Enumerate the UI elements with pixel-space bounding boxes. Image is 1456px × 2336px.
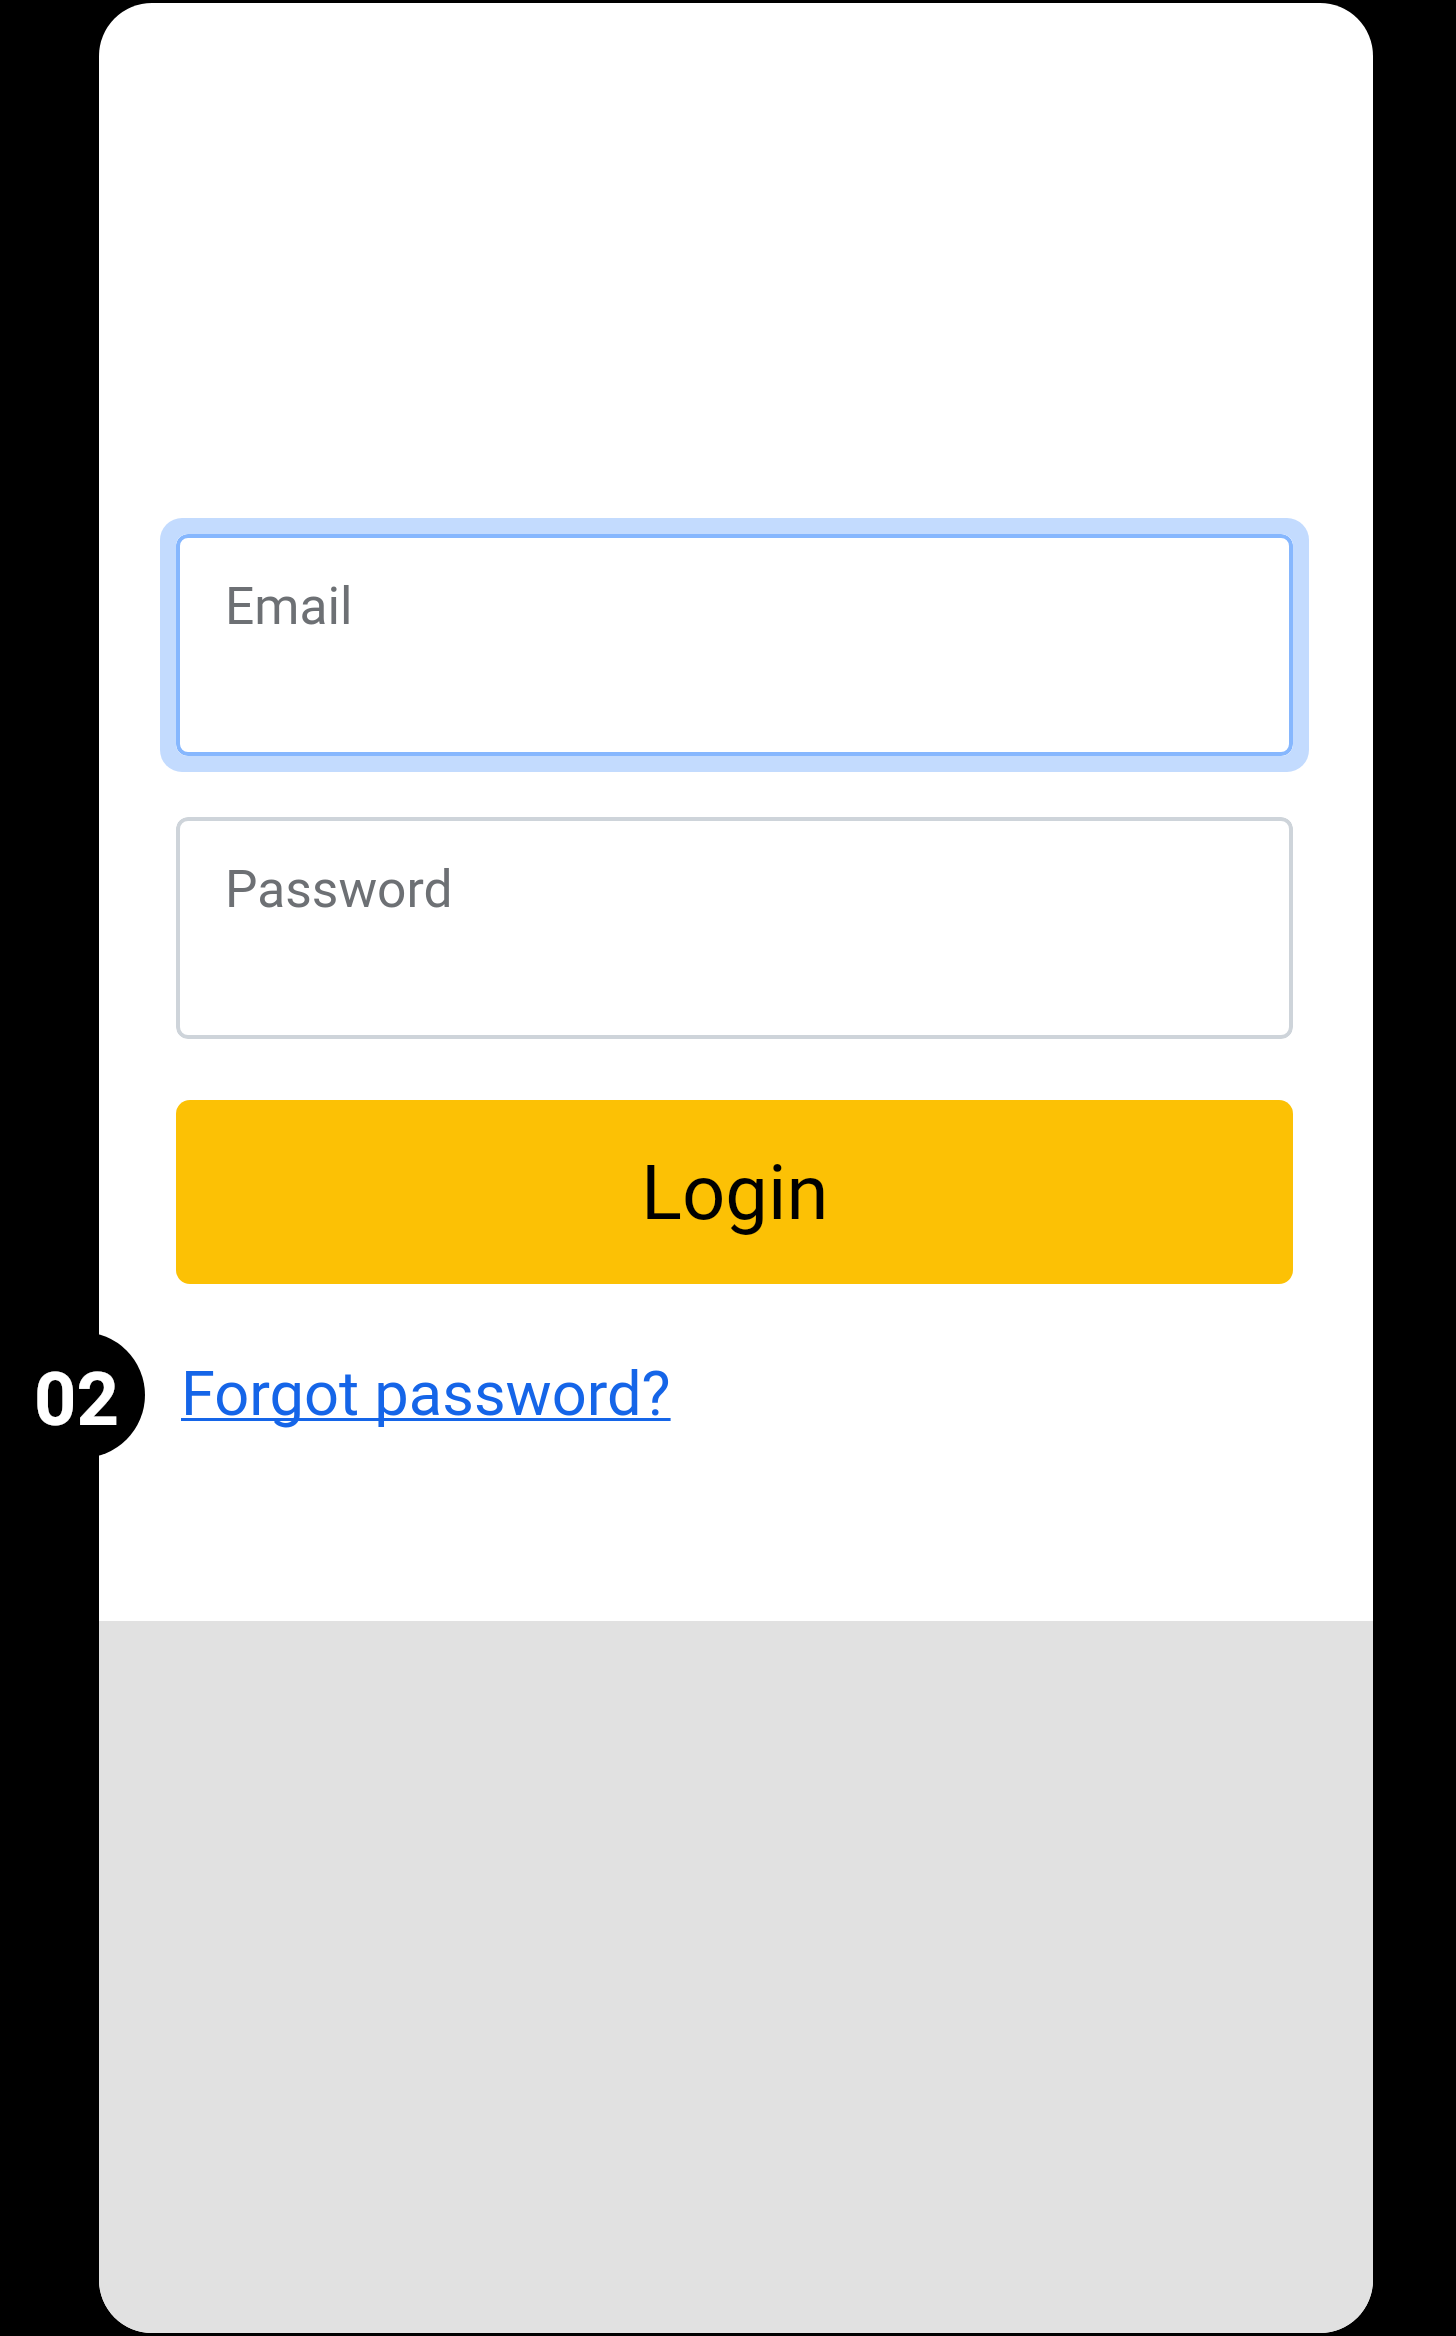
staticText: Forgot password? xyxy=(181,1358,671,1430)
button[interactable]: Forgot password? xyxy=(181,1358,671,1430)
button[interactable]: Login xyxy=(176,1100,1293,1284)
staticText: Email xyxy=(225,576,353,636)
button[interactable]: Password xyxy=(176,817,1293,1039)
button[interactable]: Email xyxy=(176,534,1293,756)
staticText: 02 xyxy=(34,1356,119,1443)
staticText: Login xyxy=(641,1148,829,1237)
staticText: Password xyxy=(225,859,453,919)
